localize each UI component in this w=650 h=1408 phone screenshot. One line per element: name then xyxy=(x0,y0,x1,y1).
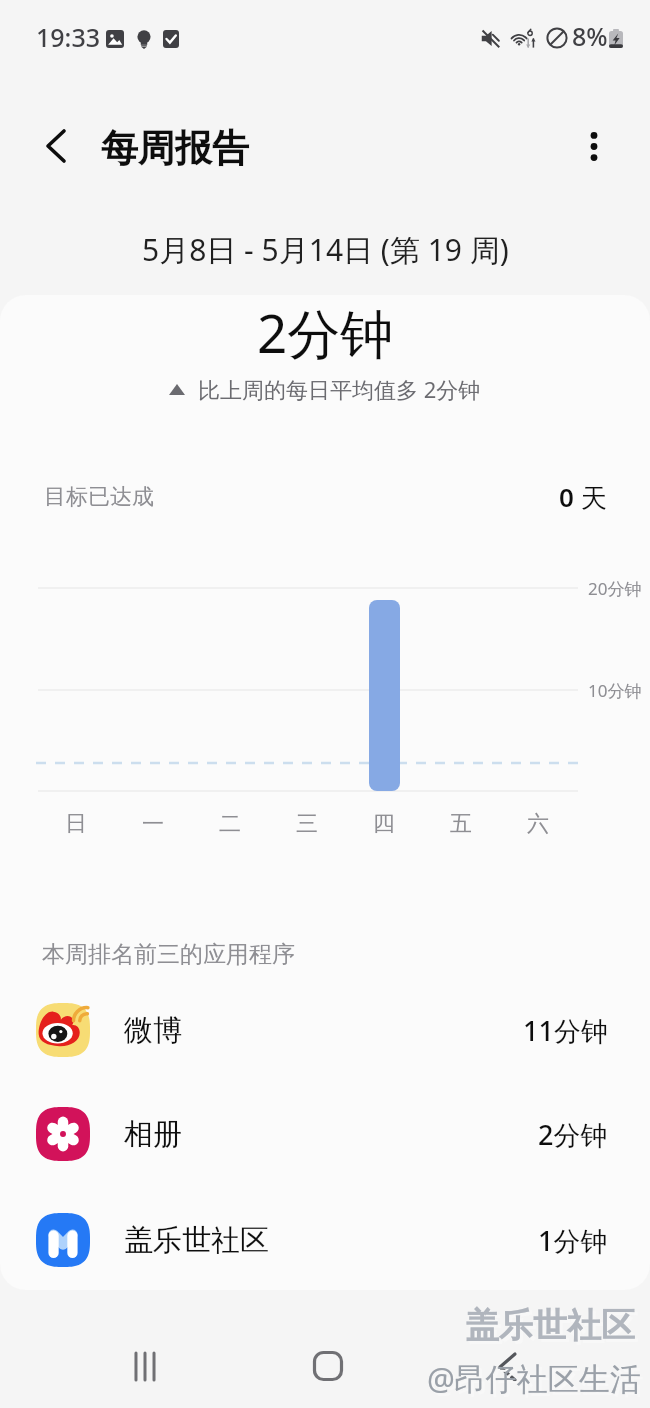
staticText: @昂仔社区生活 xyxy=(427,1357,641,1399)
button[interactable]: 相册 xyxy=(0,1082,650,1186)
staticText: 每周报告 xyxy=(101,125,249,172)
button[interactable]: Back xyxy=(477,1337,537,1397)
staticText: 日 xyxy=(65,810,87,838)
button[interactable]: Back xyxy=(28,118,84,174)
button[interactable]: 微博 xyxy=(0,978,650,1082)
staticText: 五 xyxy=(450,810,472,838)
staticText: 比上周的每日平均值多 2分钟 xyxy=(198,374,481,404)
staticText: 一 xyxy=(142,810,164,838)
staticText: 盖乐世社区 xyxy=(468,1307,638,1350)
staticText: @昂仔社区生活 xyxy=(430,1360,644,1402)
staticText: 相册 xyxy=(124,1116,182,1153)
staticText: 三 xyxy=(296,810,318,838)
staticText: 1分钟 xyxy=(538,1222,608,1259)
button[interactable]: Recent apps xyxy=(115,1336,175,1396)
staticText: 0 天 xyxy=(559,479,607,515)
button[interactable]: More options xyxy=(566,118,622,174)
staticText: 10分钟 xyxy=(588,679,642,702)
staticText: 四 xyxy=(373,810,395,838)
staticText: 盖乐世社区 xyxy=(465,1304,635,1347)
staticText: 11分钟 xyxy=(523,1012,608,1049)
button[interactable]: 盖乐世社区 xyxy=(0,1188,650,1292)
staticText: 2分钟 xyxy=(538,1116,608,1153)
staticText: 盖乐世社区 xyxy=(124,1222,269,1259)
staticText: 20分钟 xyxy=(588,577,642,600)
staticText: 二 xyxy=(219,810,241,838)
staticText: 2分钟 xyxy=(257,296,394,368)
staticText: 5月8日 - 5月14日 (第 19 周) xyxy=(142,229,509,270)
staticText: 8% xyxy=(572,19,608,53)
staticText: 本周排名前三的应用程序 xyxy=(42,940,295,969)
staticText: 目标已达成 xyxy=(44,483,154,511)
button[interactable]: Home xyxy=(298,1336,358,1396)
staticText: 微博 xyxy=(124,1012,182,1049)
staticText: 六 xyxy=(527,810,549,838)
staticText: 19:33 xyxy=(36,20,101,54)
